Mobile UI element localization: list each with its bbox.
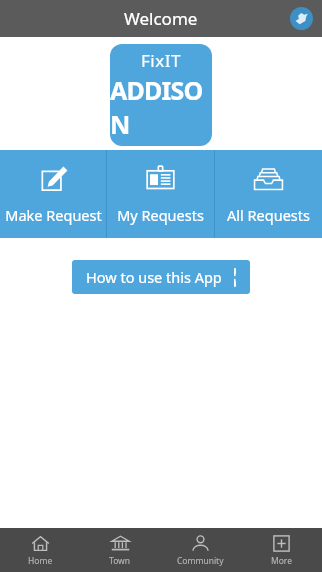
staticText: ADDISON <box>110 73 212 141</box>
staticText: How to use this App <box>86 267 222 287</box>
button[interactable]: My Requests <box>107 150 214 238</box>
staticText: Town <box>109 555 131 567</box>
staticText: More <box>271 555 292 567</box>
staticText: Welcome <box>124 7 198 30</box>
button[interactable]: More <box>241 528 322 572</box>
button[interactable]: FixIT <box>110 44 212 146</box>
button[interactable]: How to use this App <box>72 260 250 294</box>
button[interactable]: Community <box>160 528 241 572</box>
staticText: Make Request <box>5 205 102 225</box>
staticText: FixIT <box>141 49 181 72</box>
button[interactable]: Home <box>0 528 80 572</box>
button[interactable]: All Requests <box>215 150 322 238</box>
button[interactable]: Twitter <box>290 7 313 30</box>
staticText: All Requests <box>227 205 310 225</box>
button[interactable]: Make Request <box>0 150 106 238</box>
staticText: My Requests <box>117 205 204 225</box>
staticText: Home <box>28 555 53 567</box>
staticText: Community <box>177 555 224 567</box>
button[interactable]: Town <box>80 528 160 572</box>
